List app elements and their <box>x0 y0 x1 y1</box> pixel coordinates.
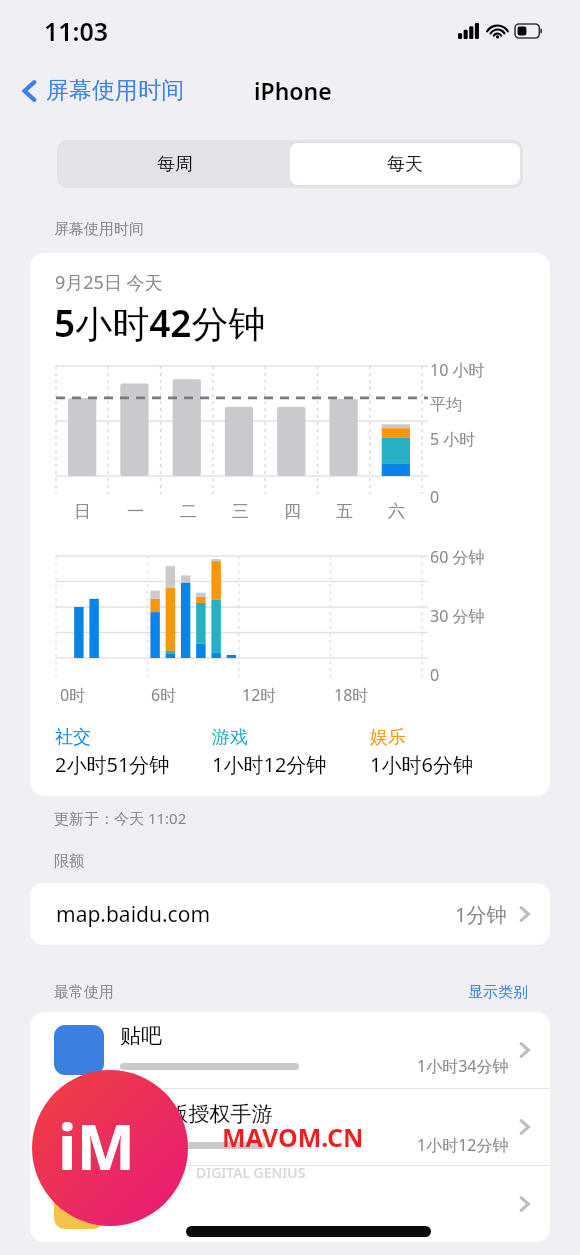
staticText: 微博 <box>120 1185 162 1211</box>
staticText: 12时 <box>242 684 277 706</box>
staticText: 最常使用 <box>54 983 114 1002</box>
staticText: 10 小时 <box>430 359 485 381</box>
staticText: 0时 <box>60 684 86 706</box>
staticText: 屏幕使用时间 <box>46 76 184 105</box>
staticText: MAVOM.CN <box>222 1120 364 1154</box>
button[interactable]: 屏幕使用时间 <box>16 72 190 109</box>
staticText: 三 <box>232 501 249 522</box>
staticText: 娱乐 <box>370 726 406 749</box>
button[interactable]: 9月25日 今天 <box>30 253 550 796</box>
staticText: 9月25日 今天 <box>55 270 163 295</box>
staticText: 屏幕使用时间 <box>54 220 144 239</box>
staticText: 六 <box>388 501 405 522</box>
staticText: 社交 <box>55 726 91 749</box>
button[interactable]: 贴吧 <box>30 1012 550 1088</box>
staticText: 贴吧 <box>120 1023 162 1049</box>
staticText: 平均 <box>430 395 462 415</box>
button[interactable]: 每天 <box>290 143 520 185</box>
button[interactable]: 显示类别 <box>468 983 528 1002</box>
staticText: iPhone <box>254 75 332 106</box>
staticText: iM <box>58 1104 136 1188</box>
staticText: 30 分钟 <box>430 605 485 627</box>
staticText: 18时 <box>334 684 369 706</box>
staticText: 1小时34分钟 <box>417 1055 509 1077</box>
staticText: 一 <box>127 501 144 522</box>
staticText: 每周 <box>157 153 193 176</box>
staticText: 每天 <box>387 153 423 176</box>
staticText: 1分钟 <box>455 901 507 928</box>
staticText: 1小时12分钟 <box>212 751 327 778</box>
staticText: 二 <box>180 501 197 522</box>
staticText: 60 分钟 <box>430 546 485 568</box>
staticText: 限额 <box>54 852 84 871</box>
staticText: 11:03 <box>44 14 109 48</box>
staticText: 5小时42分钟 <box>54 297 266 348</box>
staticText: 四 <box>284 501 301 522</box>
staticText: 6时 <box>151 684 177 706</box>
staticText: 更新于：今天 11:02 <box>54 808 187 828</box>
staticText: 1小时6分钟 <box>370 751 473 778</box>
button[interactable]: 手 正版授权手游 <box>30 1089 550 1165</box>
staticText: 0 <box>430 486 440 508</box>
staticText: 日 <box>74 501 91 522</box>
staticText: DIGITAL GENIUS <box>196 1163 306 1182</box>
staticText: 5 小时 <box>430 428 476 450</box>
staticText: 五 <box>336 501 353 522</box>
staticText: 1小时12分钟 <box>417 1134 509 1156</box>
staticText: 0 <box>430 664 440 686</box>
staticText: 2小时51分钟 <box>55 751 170 778</box>
button[interactable]: 每周 <box>60 143 290 185</box>
staticText: 游戏 <box>212 726 248 749</box>
button[interactable]: map.baidu.com <box>30 883 550 945</box>
button[interactable]: 微博 <box>30 1166 550 1242</box>
staticText: 手 正版授权手游 <box>120 1099 273 1128</box>
staticText: map.baidu.com <box>56 900 211 929</box>
staticText: 显示类别 <box>468 983 528 1002</box>
